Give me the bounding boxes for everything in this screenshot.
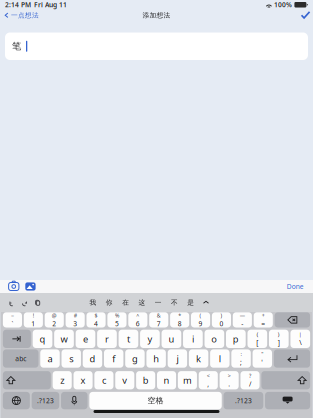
staticText: 是 bbox=[187, 298, 194, 307]
button[interactable]: More candidates bbox=[199, 296, 213, 308]
button[interactable]: ) bbox=[212, 312, 231, 327]
button[interactable]: z bbox=[53, 371, 72, 389]
button[interactable]: Photo Library bbox=[25, 281, 36, 292]
button[interactable]: q bbox=[33, 330, 52, 348]
button[interactable]: — bbox=[233, 312, 252, 327]
button[interactable] bbox=[3, 392, 30, 409]
button[interactable]: g bbox=[125, 349, 145, 368]
button[interactable]: .?123 bbox=[32, 392, 59, 409]
button[interactable]: x bbox=[73, 371, 93, 389]
button[interactable]: ~ bbox=[3, 312, 22, 327]
staticText: 一点想法 bbox=[11, 11, 39, 19]
button[interactable]: Done bbox=[298, 9, 313, 21]
button[interactable]: Undo bbox=[5, 296, 18, 308]
button[interactable]: c bbox=[94, 371, 113, 389]
button[interactable]: & bbox=[149, 312, 168, 327]
button[interactable]: 空格 bbox=[89, 392, 222, 409]
staticText: .?123 bbox=[37, 396, 54, 405]
button[interactable]: < bbox=[199, 371, 218, 389]
button[interactable]: > bbox=[220, 371, 239, 389]
button[interactable]: y bbox=[140, 330, 160, 348]
button[interactable]: ( bbox=[191, 312, 210, 327]
button[interactable]: n bbox=[157, 371, 176, 389]
button[interactable] bbox=[3, 330, 31, 348]
button[interactable]: k bbox=[189, 349, 208, 368]
button[interactable]: Paste bbox=[31, 296, 44, 308]
staticText: t bbox=[127, 333, 130, 345]
button[interactable]: 是 bbox=[183, 295, 199, 309]
staticText: 不 bbox=[171, 298, 178, 307]
button[interactable]: a bbox=[40, 349, 60, 368]
staticText: m bbox=[183, 374, 192, 386]
staticText: w bbox=[60, 333, 67, 345]
button[interactable] bbox=[261, 371, 310, 389]
button[interactable]: m bbox=[178, 371, 197, 389]
staticText: $ bbox=[95, 312, 98, 319]
button[interactable]: 这 bbox=[134, 295, 150, 309]
staticText: z bbox=[60, 374, 64, 386]
staticText: e bbox=[83, 333, 88, 345]
button[interactable]: Camera bbox=[9, 281, 19, 292]
button[interactable]: d bbox=[83, 349, 102, 368]
staticText: " bbox=[261, 350, 263, 358]
staticText: < bbox=[207, 372, 210, 379]
button[interactable]: abc bbox=[3, 349, 38, 368]
button[interactable]: 一点想法 bbox=[0, 9, 43, 21]
button[interactable]: Redo bbox=[18, 296, 31, 308]
button[interactable]: 我 bbox=[85, 295, 101, 309]
button[interactable]: o bbox=[204, 330, 224, 348]
button[interactable] bbox=[3, 371, 51, 389]
button[interactable]: 你 bbox=[101, 295, 117, 309]
button[interactable]: : bbox=[231, 349, 251, 368]
staticText: 一 bbox=[155, 298, 162, 307]
button[interactable]: 不 bbox=[166, 295, 183, 309]
staticText: 2:14 PM bbox=[5, 0, 31, 9]
button[interactable]: $ bbox=[86, 312, 106, 327]
button[interactable]: 一 bbox=[150, 295, 166, 309]
button[interactable]: u bbox=[162, 330, 181, 348]
button[interactable]: s bbox=[61, 349, 81, 368]
staticText: r bbox=[105, 333, 109, 345]
button[interactable]: ! bbox=[24, 312, 43, 327]
staticText: & bbox=[157, 312, 161, 319]
staticText: } bbox=[278, 331, 280, 338]
button[interactable]: { bbox=[247, 330, 267, 348]
staticText: ~ bbox=[11, 312, 14, 319]
button[interactable]: + bbox=[254, 312, 273, 327]
button[interactable]: | bbox=[290, 330, 310, 348]
button[interactable]: % bbox=[107, 312, 126, 327]
staticText: n bbox=[163, 374, 169, 386]
button[interactable]: ^ bbox=[128, 312, 147, 327]
button[interactable]: w bbox=[54, 330, 74, 348]
staticText: ? bbox=[249, 372, 251, 379]
staticText: q bbox=[39, 333, 45, 345]
button[interactable]: * bbox=[170, 312, 189, 327]
button[interactable]: @ bbox=[45, 312, 64, 327]
button[interactable] bbox=[265, 392, 310, 409]
button[interactable]: ? bbox=[240, 371, 260, 389]
button[interactable]: 在 bbox=[117, 295, 134, 309]
button[interactable]: b bbox=[136, 371, 155, 389]
button[interactable]: v bbox=[115, 371, 134, 389]
button[interactable] bbox=[275, 312, 310, 327]
button[interactable]: r bbox=[97, 330, 117, 348]
button[interactable]: # bbox=[66, 312, 85, 327]
staticText: { bbox=[256, 331, 258, 338]
staticText: c bbox=[102, 374, 106, 386]
button[interactable]: Done bbox=[287, 282, 304, 291]
button[interactable] bbox=[274, 349, 310, 368]
button[interactable]: " bbox=[253, 349, 272, 368]
button[interactable]: i bbox=[183, 330, 203, 348]
button[interactable]: f bbox=[104, 349, 123, 368]
button[interactable]: .?123 bbox=[224, 392, 263, 409]
button[interactable] bbox=[61, 392, 87, 409]
button[interactable]: t bbox=[119, 330, 138, 348]
button[interactable]: h bbox=[146, 349, 166, 368]
button[interactable]: e bbox=[76, 330, 95, 348]
button[interactable]: j bbox=[168, 349, 187, 368]
staticText: , bbox=[207, 379, 209, 388]
staticText: : bbox=[241, 350, 242, 358]
button[interactable]: } bbox=[269, 330, 289, 348]
button[interactable]: l bbox=[210, 349, 229, 368]
button[interactable]: p bbox=[226, 330, 246, 348]
